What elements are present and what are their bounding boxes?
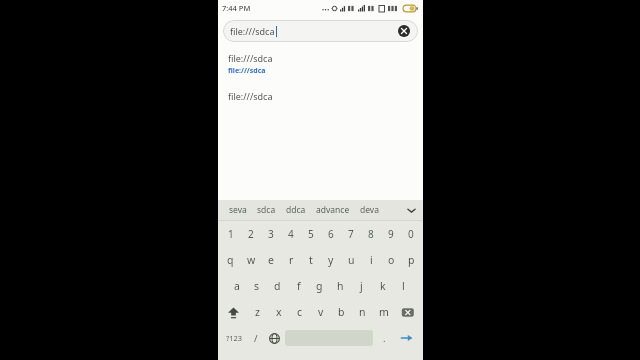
staticText: sdca — [257, 204, 276, 216]
staticText: 0 — [408, 227, 414, 241]
staticText: w — [247, 253, 256, 267]
staticText: . — [383, 332, 386, 345]
button[interactable]: c — [289, 299, 310, 325]
button[interactable]: 7 — [341, 221, 361, 247]
button[interactable]: advance — [311, 200, 355, 220]
button[interactable]: 2 — [241, 221, 261, 247]
button[interactable]: u — [341, 247, 361, 273]
button[interactable]: 6 — [321, 221, 341, 247]
staticText: 5 — [308, 227, 314, 241]
staticText: / — [254, 332, 258, 345]
button[interactable]: Clear text — [397, 24, 411, 38]
staticText: l — [402, 279, 405, 293]
button[interactable]: s — [247, 273, 267, 299]
button[interactable]: p — [401, 247, 421, 273]
button[interactable]: f — [288, 273, 309, 299]
button[interactable]: m — [373, 299, 394, 325]
staticText: 7:44 PM — [222, 3, 251, 13]
button[interactable]: Change language — [265, 325, 283, 351]
button[interactable]: a — [227, 273, 247, 299]
button[interactable]: / — [247, 325, 265, 351]
button[interactable]: x — [268, 299, 289, 325]
button[interactable]: ?123 — [221, 325, 247, 351]
button[interactable]: n — [352, 299, 373, 325]
button[interactable]: 8 — [361, 221, 381, 247]
button[interactable]: b — [331, 299, 352, 325]
staticText: ddca — [286, 204, 306, 216]
staticText: s — [254, 279, 260, 293]
staticText: 3 — [268, 227, 274, 241]
button[interactable]: 9 — [381, 221, 401, 247]
button[interactable]: deva — [355, 200, 384, 220]
staticText: 8 — [368, 227, 374, 241]
staticText: file:///sdca — [230, 25, 275, 37]
staticText: u — [348, 253, 355, 267]
button[interactable]: 1 — [220, 221, 241, 247]
staticText: f — [297, 279, 301, 293]
staticText: 6 — [328, 227, 334, 241]
staticText: j — [360, 279, 363, 293]
staticText: advance — [316, 204, 350, 216]
button[interactable]: 4 — [281, 221, 301, 247]
button[interactable]: 3 — [261, 221, 281, 247]
staticText: a — [234, 279, 240, 293]
staticText: d — [274, 279, 281, 293]
staticText: p — [408, 253, 415, 267]
staticText: 4 — [288, 227, 294, 241]
button[interactable]: r — [281, 247, 301, 273]
button[interactable]: file:///sdca — [228, 51, 423, 77]
staticText: file:///sdca — [228, 90, 273, 102]
staticText: 1 — [228, 227, 234, 241]
button[interactable]: Expand suggestions — [403, 202, 419, 218]
staticText: c — [297, 305, 303, 319]
button[interactable]: z — [247, 299, 268, 325]
staticText: file:///sdca — [228, 66, 266, 76]
staticText: n — [359, 305, 366, 319]
button[interactable]: t — [301, 247, 321, 273]
staticText: 2 — [248, 227, 254, 241]
button[interactable]: q — [220, 247, 241, 273]
button[interactable]: i — [361, 247, 381, 273]
staticText: i — [370, 253, 373, 267]
button[interactable]: w — [241, 247, 261, 273]
button[interactable]: j — [351, 273, 372, 299]
staticText: h — [337, 279, 344, 293]
button[interactable]: file:///sdca — [223, 20, 418, 42]
button[interactable]: 5 — [301, 221, 321, 247]
button[interactable]: v — [310, 299, 331, 325]
staticText: e — [268, 253, 274, 267]
staticText: z — [255, 305, 260, 319]
staticText: k — [380, 279, 386, 293]
button[interactable]: file:///sdca — [228, 89, 423, 103]
staticText: 7 — [348, 227, 354, 241]
staticText: r — [289, 253, 294, 267]
button[interactable]: h — [330, 273, 351, 299]
button[interactable]: l — [393, 273, 414, 299]
staticText: seva — [229, 204, 247, 216]
button[interactable]: 0 — [401, 221, 421, 247]
staticText: deva — [360, 204, 379, 216]
button[interactable]: Go — [393, 325, 420, 351]
staticText: v — [318, 305, 324, 319]
button[interactable]: . — [375, 325, 393, 351]
staticText: m — [379, 305, 389, 319]
button[interactable]: k — [372, 273, 393, 299]
button[interactable]: sdca — [252, 200, 281, 220]
staticText: 9 — [388, 227, 394, 241]
button[interactable]: y — [321, 247, 341, 273]
button[interactable]: o — [381, 247, 401, 273]
staticText: o — [388, 253, 395, 267]
staticText: x — [276, 305, 282, 319]
staticText: q — [227, 253, 234, 267]
button[interactable]: e — [261, 247, 281, 273]
button[interactable]: Backspace — [394, 299, 421, 325]
staticText: y — [328, 253, 334, 267]
staticText: file:///sdca — [228, 52, 273, 64]
button[interactable]: d — [267, 273, 288, 299]
button[interactable]: seva — [224, 200, 252, 220]
button[interactable]: g — [309, 273, 330, 299]
staticText: t — [309, 253, 313, 267]
button[interactable]: Shift — [220, 299, 247, 325]
button[interactable]: ddca — [281, 200, 311, 220]
